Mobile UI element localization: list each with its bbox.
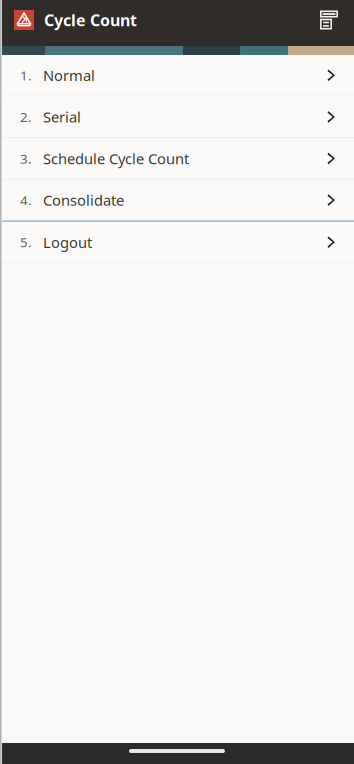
button[interactable]: 3. (0, 138, 354, 179)
staticText: Consolidate (43, 190, 124, 210)
button[interactable]: Reports (312, 3, 346, 37)
button[interactable]: 1. (0, 55, 354, 96)
staticText: 4. (20, 191, 32, 209)
staticText: Normal (43, 66, 95, 85)
button[interactable]: 2. (0, 97, 354, 137)
staticText: 1. (20, 66, 32, 84)
staticText: 3. (20, 150, 32, 167)
staticText: Schedule Cycle Count (43, 149, 189, 168)
staticText: Cycle Count (44, 9, 137, 31)
staticText: 2. (20, 108, 32, 126)
staticText: Serial (43, 107, 81, 127)
staticText: Logout (43, 232, 92, 252)
button[interactable]: 4. (0, 180, 354, 220)
button[interactable]: 5. (0, 222, 354, 262)
staticText: 5. (20, 233, 32, 251)
